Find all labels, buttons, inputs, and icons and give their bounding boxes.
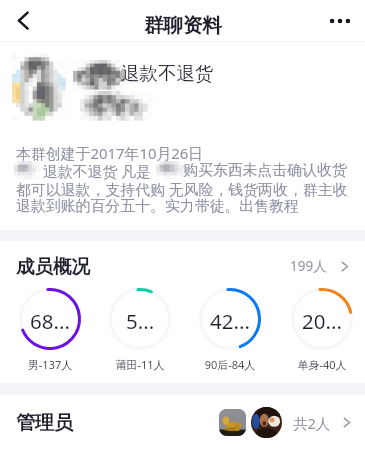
button[interactable]: 20... bbox=[291, 288, 353, 350]
staticText: 退款不退货 bbox=[121, 62, 214, 85]
button[interactable]: 退款不退货 bbox=[0, 42, 365, 130]
staticText: 管理员 bbox=[16, 411, 73, 435]
staticText: 退款不退货 凡是 bbox=[43, 161, 152, 181]
staticText: 5... bbox=[126, 307, 155, 335]
staticText: 42... bbox=[210, 307, 250, 335]
staticText: 莆田-11人 bbox=[100, 357, 180, 372]
staticText: 成员概况 bbox=[16, 255, 90, 278]
button[interactable]: 管理员 bbox=[0, 395, 365, 450]
staticText: 199人 bbox=[290, 257, 327, 275]
staticText: 单身-40人 bbox=[282, 357, 362, 372]
button[interactable]: 5... bbox=[109, 288, 171, 350]
staticText: 90后-84人 bbox=[190, 357, 270, 372]
button[interactable]: 本群创建于2017年10月26日 bbox=[0, 130, 365, 230]
button[interactable]: 68... bbox=[19, 288, 81, 350]
button[interactable]: 42... bbox=[199, 288, 261, 350]
staticText: 群聊资料 bbox=[1, 13, 365, 38]
staticText: 20... bbox=[302, 307, 342, 335]
button[interactable]: Back bbox=[2, 0, 42, 40]
staticText: 都可以退款，支持代购 无风险，钱货两收，群主收 bbox=[16, 179, 348, 199]
staticText: 68... bbox=[30, 307, 70, 335]
staticText: 共2人 bbox=[293, 413, 331, 433]
staticText: 男-137人 bbox=[10, 357, 90, 372]
staticText: 本群创建于2017年10月26日 bbox=[16, 143, 204, 163]
staticText: 退款到账的百分五十。实力带徒。出售教程 bbox=[16, 197, 299, 216]
button[interactable]: More options bbox=[320, 0, 360, 40]
button[interactable]: 成员概况 bbox=[0, 243, 365, 289]
staticText: 购买东西未点击确认收货 bbox=[183, 161, 347, 180]
